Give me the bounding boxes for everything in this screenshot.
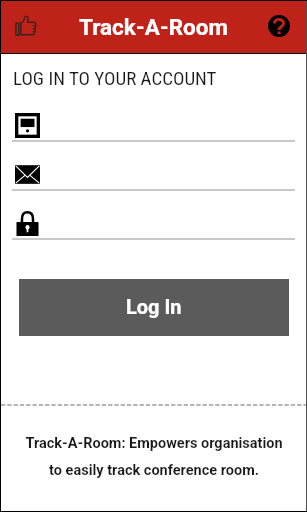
staticText: Track-A-Room: Empowers organisation (25, 435, 283, 452)
staticText: LOG IN TO YOUR ACCOUNT (13, 67, 217, 89)
button[interactable] (1, 207, 306, 244)
staticText: Log In (126, 295, 182, 318)
button[interactable] (1, 158, 306, 195)
button[interactable]: Help (264, 11, 294, 41)
button[interactable]: Log In (19, 279, 289, 336)
button[interactable] (1, 109, 306, 146)
staticText: Track-A-Room (79, 14, 229, 40)
button[interactable]: Like (10, 10, 40, 40)
staticText: to easily track conference room. (49, 462, 259, 479)
